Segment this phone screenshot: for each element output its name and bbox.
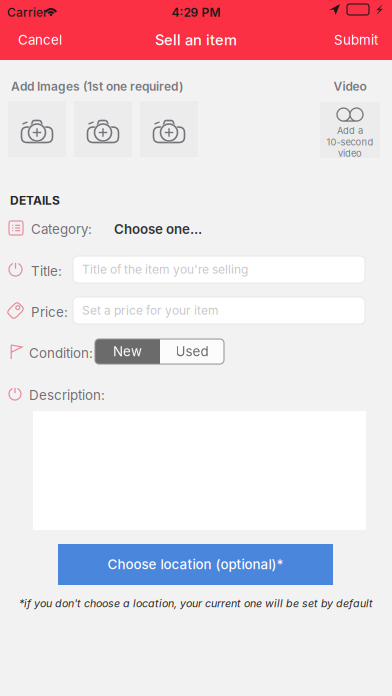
staticText: Submit: [334, 32, 378, 48]
staticText: Category:: [31, 221, 92, 237]
staticText: 10-second: [326, 136, 373, 148]
button[interactable]: Set a price for your item: [73, 297, 365, 324]
staticText: Sell an item: [155, 31, 237, 49]
button[interactable]: Choose location (optional)*: [58, 544, 333, 585]
staticText: Choose one...: [114, 221, 202, 237]
button[interactable]: Title of the item you're selling: [73, 256, 365, 283]
staticText: Title:: [31, 263, 62, 279]
staticText: Price:: [31, 304, 68, 320]
staticText: 4:29 PM: [171, 5, 220, 19]
button[interactable]: New: [95, 339, 160, 364]
staticText: DETAILS: [10, 193, 60, 207]
staticText: Cancel: [18, 32, 62, 48]
staticText: Used: [175, 343, 208, 359]
staticText: New: [113, 343, 142, 359]
staticText: Add Images (1st one required): [11, 79, 183, 93]
button[interactable]: Submit: [316, 20, 392, 60]
button[interactable]: Add a 10-second video: [320, 102, 380, 158]
staticText: Title of the item you're selling: [82, 262, 248, 277]
button[interactable]: Used: [160, 339, 224, 364]
button[interactable]: Add image: [8, 101, 66, 157]
button[interactable]: Cancel: [0, 20, 80, 60]
staticText: Set a price for your item: [82, 303, 219, 318]
staticText: *if you don't choose a location, your cu…: [19, 597, 373, 610]
staticText: video: [338, 148, 362, 159]
button[interactable]: Choose one...: [106, 215, 210, 243]
staticText: Video: [333, 79, 366, 93]
staticText: Add a: [337, 125, 363, 136]
button[interactable]: Add image: [74, 101, 132, 157]
staticText: Carrier: [7, 5, 48, 19]
staticText: Description:: [29, 387, 105, 403]
button[interactable]: Add image: [140, 101, 198, 157]
staticText: Condition:: [29, 345, 93, 361]
staticText: Choose location (optional)*: [107, 556, 283, 572]
